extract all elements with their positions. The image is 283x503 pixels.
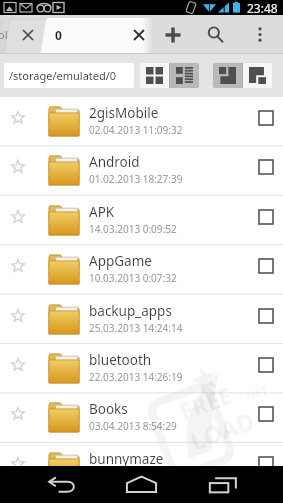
button[interactable]: Add to favourites <box>0 344 283 393</box>
button[interactable]: Add to favourites <box>4 450 31 477</box>
button[interactable]: View option <box>243 63 272 88</box>
staticText: /storage/emulated/0 <box>9 68 117 83</box>
button[interactable]: Add to favourites <box>4 400 31 427</box>
button[interactable]: View option <box>170 63 199 88</box>
button[interactable]: Add to favourites <box>4 153 31 180</box>
staticText: backup_apps <box>89 302 172 320</box>
button[interactable]: Back <box>28 466 95 503</box>
button[interactable]: Add to favourites <box>0 443 283 492</box>
staticText: 15.03.2013 12:10:44 <box>89 469 183 483</box>
staticText: ol <box>0 27 8 42</box>
staticText: 03.04.2013 8:54:29 <box>89 419 177 433</box>
staticText: Android <box>89 153 140 171</box>
button[interactable]: Add to favourites <box>4 104 31 131</box>
button[interactable]: Select <box>252 104 280 132</box>
button[interactable]: 0 <box>44 15 150 54</box>
staticText: FREE <box>175 379 236 426</box>
staticText: 14.03.2013 0:09:52 <box>89 222 177 236</box>
button[interactable]: Add to favourites <box>4 203 31 230</box>
button[interactable]: Add to favourites <box>4 302 31 329</box>
button[interactable]: Select <box>252 302 280 330</box>
button[interactable]: Select <box>252 252 280 280</box>
button[interactable]: Recent apps <box>189 466 256 503</box>
staticText: 22.03.2013 14:26:19 <box>89 370 183 384</box>
staticText: 23:48 <box>247 0 278 15</box>
button[interactable]: Home <box>108 466 175 503</box>
button[interactable]: Add to favourites <box>0 196 283 245</box>
button[interactable]: Select <box>252 203 280 231</box>
button[interactable]: Add to favourites <box>0 245 283 294</box>
staticText: AppGame <box>89 252 152 270</box>
button[interactable]: Add to favourites <box>0 146 283 195</box>
button[interactable]: Add to favourites <box>4 351 31 378</box>
button[interactable]: View option <box>213 63 242 88</box>
staticText: APK <box>89 203 115 221</box>
staticText: bluetooth <box>89 351 152 369</box>
staticText: .NET <box>241 382 270 405</box>
button[interactable]: New tab <box>156 15 190 54</box>
staticText: 2gisMobile <box>89 104 159 122</box>
staticText: 25.03.2013 14:24:14 <box>89 321 183 335</box>
button[interactable]: Select <box>252 450 280 478</box>
button[interactable]: Select <box>252 351 280 379</box>
button[interactable]: /storage/emulated/0 <box>4 63 134 88</box>
button[interactable]: Add to favourites <box>0 295 283 344</box>
staticText: 10.03.2013 0:07:32 <box>89 271 177 285</box>
staticText: Books <box>89 400 128 418</box>
staticText: 0 <box>55 27 62 43</box>
staticText: LOAD <box>186 404 259 457</box>
button[interactable]: Close tab <box>14 15 42 54</box>
button[interactable]: Add to favourites <box>0 97 283 146</box>
staticText: 02.04.2013 11:09:32 <box>89 123 183 137</box>
button[interactable]: View option <box>140 63 169 88</box>
staticText: 01.02.2013 18:27:39 <box>89 172 183 186</box>
button[interactable]: Add to favourites <box>4 252 31 279</box>
button[interactable]: Add to favourites <box>0 393 283 442</box>
button[interactable]: Search <box>198 15 232 54</box>
button[interactable]: Select <box>252 400 280 428</box>
staticText: bunnymaze <box>89 450 164 468</box>
button[interactable]: Select <box>252 153 280 181</box>
button[interactable]: More options <box>245 15 275 54</box>
